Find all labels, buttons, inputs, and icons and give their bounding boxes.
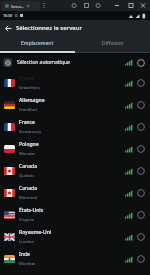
button[interactable]: Canada	[4, 160, 145, 182]
staticText: Gravelines	[19, 85, 40, 91]
staticText: Allemagne	[19, 97, 45, 104]
button[interactable]	[137, 123, 145, 131]
staticText: Canada	[19, 163, 37, 170]
button[interactable]: Royaume-Uni	[4, 226, 145, 248]
button[interactable]	[137, 167, 145, 175]
staticText: Strasbourg	[19, 129, 41, 135]
staticText: Frankfurt	[19, 107, 38, 113]
button[interactable]: Secur...	[2, 1, 40, 11]
button[interactable]: Diffusion	[75, 36, 150, 51]
staticText: Pologne	[19, 141, 39, 148]
button[interactable]: Inde	[4, 248, 145, 270]
button[interactable]: Sélection automatique	[3, 53, 145, 72]
button[interactable]: États-Unis	[4, 204, 145, 226]
button[interactable]	[0, 20, 16, 36]
button[interactable]	[137, 79, 145, 87]
staticText: Warsaw	[19, 151, 35, 157]
staticText: Mumbai	[19, 261, 36, 267]
staticText: Quebec	[19, 173, 35, 179]
button[interactable]	[137, 145, 145, 153]
staticText: Emplacement	[21, 40, 54, 47]
button[interactable]: Emplacement	[0, 36, 75, 51]
staticText: Virginia	[19, 217, 34, 223]
button[interactable]: Allemagne	[4, 94, 145, 116]
button[interactable]	[137, 211, 145, 219]
button[interactable]: France	[4, 116, 145, 138]
button[interactable]	[137, 233, 145, 241]
staticText: États-Unis	[19, 207, 44, 214]
staticText: Canada	[19, 185, 37, 192]
staticText: London	[19, 239, 35, 245]
staticText: France	[19, 119, 35, 126]
button[interactable]	[137, 59, 145, 67]
staticText: Sélection automatique	[17, 59, 125, 66]
button[interactable]	[137, 101, 145, 109]
staticText: 10:30	[3, 13, 13, 18]
button[interactable]: Canada	[4, 182, 145, 204]
staticText: Inde	[19, 251, 30, 258]
button[interactable]: France	[4, 72, 145, 94]
staticText: G	[15, 13, 18, 18]
staticText: Sélectionnez le serveur	[16, 24, 83, 32]
staticText: Diffusion	[102, 40, 124, 47]
staticText: Royaume-Uni	[19, 229, 52, 236]
staticText: Secur...	[11, 4, 25, 9]
staticText: Montreal	[19, 195, 37, 201]
staticText: France	[19, 75, 35, 82]
button[interactable]: Pologne	[4, 138, 145, 160]
button[interactable]	[137, 189, 145, 197]
button[interactable]	[137, 255, 145, 263]
staticText: ×	[27, 3, 30, 9]
